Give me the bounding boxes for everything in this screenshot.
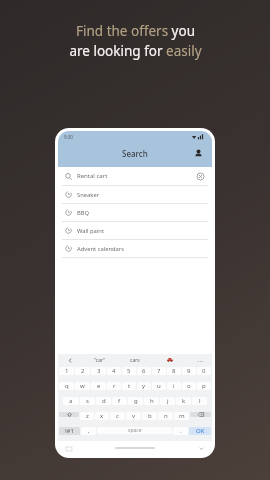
staticText: 0: [202, 367, 206, 375]
staticText: 5: [127, 367, 131, 375]
staticText: 8: [172, 367, 176, 375]
button[interactable]: s: [80, 397, 95, 405]
button[interactable]: ,: [81, 427, 96, 435]
staticText: c: [116, 412, 119, 420]
button[interactable]: 8: [167, 367, 181, 375]
staticText: 9: [187, 367, 191, 375]
staticText: n: [164, 412, 168, 420]
staticText: 6: [142, 367, 146, 375]
button[interactable]: 4: [107, 367, 121, 375]
button[interactable]: j: [160, 397, 175, 405]
button[interactable]: Rental cart: [58, 167, 212, 185]
staticText: Search: [122, 148, 148, 159]
button[interactable]: Advent calendars: [58, 240, 212, 257]
staticText: g: [134, 397, 138, 405]
button[interactable]: Shift: [59, 412, 79, 417]
button[interactable]: 7: [152, 367, 166, 375]
button[interactable]: 5: [122, 367, 136, 375]
staticText: cars: [130, 357, 140, 364]
button[interactable]: [152, 358, 187, 362]
button[interactable]: x: [95, 412, 109, 420]
button[interactable]: e: [91, 382, 106, 390]
button[interactable]: h: [144, 397, 159, 405]
staticText: x: [100, 412, 104, 420]
staticText: Wall paint: [77, 227, 105, 235]
button[interactable]: space: [97, 427, 172, 434]
staticText: ⋯: [197, 357, 203, 364]
staticText: u: [157, 382, 161, 390]
button[interactable]: v: [126, 412, 141, 420]
staticText: f: [118, 397, 121, 405]
button[interactable]: 0: [197, 367, 211, 375]
staticText: q: [65, 382, 69, 390]
staticText: 1: [65, 367, 69, 375]
button[interactable]: a: [63, 397, 79, 405]
staticText: space: [128, 427, 142, 434]
staticText: d: [102, 397, 106, 405]
button[interactable]: y: [137, 382, 151, 390]
button[interactable]: OK: [189, 427, 211, 435]
staticText: Sneaker: [77, 191, 100, 199]
button[interactable]: g: [128, 397, 143, 405]
staticText: e: [97, 382, 101, 390]
button[interactable]: b: [142, 412, 157, 420]
button[interactable]: n: [158, 412, 173, 420]
staticText: t: [128, 382, 131, 390]
button[interactable]: cars: [117, 357, 152, 364]
button[interactable]: Backspace: [190, 412, 211, 417]
button[interactable]: t: [122, 382, 136, 390]
staticText: Find the offers you are looking for easi…: [69, 22, 202, 60]
staticText: Advent calendars: [77, 245, 125, 253]
staticText: 2: [81, 367, 85, 375]
button[interactable]: !#1: [59, 427, 80, 435]
staticText: z: [86, 412, 89, 420]
staticText: l: [199, 397, 201, 405]
staticText: 7: [157, 367, 161, 375]
staticText: w: [80, 382, 85, 390]
button[interactable]: d: [96, 397, 111, 405]
button[interactable]: r: [107, 382, 121, 390]
staticText: BBQ: [77, 209, 90, 217]
staticText: .: [180, 427, 182, 435]
button[interactable]: 1: [59, 367, 74, 375]
button[interactable]: .: [173, 427, 188, 435]
staticText: b: [148, 412, 152, 420]
staticText: !#1: [65, 427, 74, 435]
staticText: m: [179, 412, 185, 420]
button[interactable]: q: [59, 382, 74, 390]
button[interactable]: Sneaker: [58, 186, 212, 203]
button[interactable]: Wall paint: [58, 222, 212, 239]
button[interactable]: BBQ: [58, 204, 212, 221]
staticText: k: [182, 397, 186, 405]
button[interactable]: Keyboard: [64, 444, 73, 453]
button[interactable]: Clear: [195, 171, 205, 181]
button[interactable]: More: [187, 357, 212, 364]
button[interactable]: 9: [182, 367, 196, 375]
button[interactable]: o: [182, 382, 196, 390]
button[interactable]: m: [174, 412, 189, 420]
staticText: Rental cart: [77, 172, 108, 180]
button[interactable]: l: [192, 397, 207, 405]
button[interactable]: c: [110, 412, 125, 420]
button[interactable]: f: [112, 397, 127, 405]
button[interactable]: 3: [91, 367, 106, 375]
button[interactable]: z: [80, 412, 94, 420]
staticText: OK: [196, 427, 205, 435]
staticText: y: [142, 382, 146, 390]
button[interactable]: 6: [137, 367, 151, 375]
staticText: 9:30: [64, 134, 73, 140]
button[interactable]: p: [197, 382, 211, 390]
button[interactable]: u: [152, 382, 166, 390]
button[interactable]: 2: [75, 367, 90, 375]
staticText: "car": [94, 357, 106, 364]
button[interactable]: Account: [191, 146, 205, 160]
button[interactable]: Back: [58, 358, 82, 363]
button[interactable]: "car": [82, 357, 117, 364]
staticText: 4: [112, 367, 116, 375]
button[interactable]: Hide keyboard: [197, 444, 206, 453]
staticText: i: [173, 382, 175, 390]
staticText: s: [86, 397, 89, 405]
button[interactable]: i: [167, 382, 181, 390]
button[interactable]: w: [75, 382, 90, 390]
button[interactable]: k: [176, 397, 191, 405]
